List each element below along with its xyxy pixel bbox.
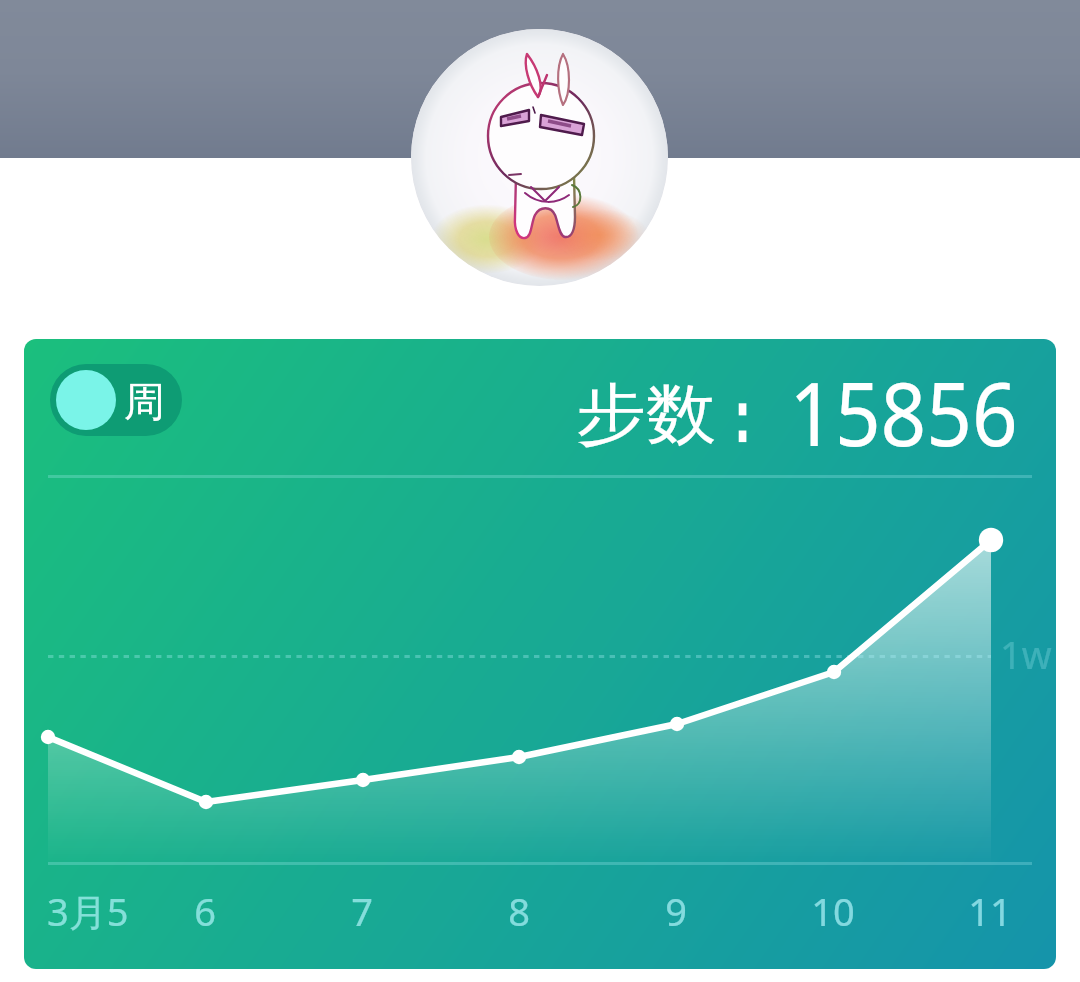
staticText: 周 [124, 377, 165, 429]
staticText: 15856 [789, 352, 1018, 472]
button[interactable]: Toggle week view [50, 364, 182, 436]
staticText: 9 [626, 885, 726, 937]
button[interactable]: Profile avatar [411, 29, 668, 286]
staticText: 8 [469, 885, 569, 937]
staticText: 步数 [576, 373, 716, 456]
staticText: 6 [155, 885, 255, 937]
staticText: 11 [940, 885, 1040, 937]
staticText: 7 [312, 885, 412, 937]
staticText: 10 [783, 885, 883, 937]
staticText: 3月5 [47, 885, 129, 937]
staticText: 1w [1000, 628, 1052, 680]
